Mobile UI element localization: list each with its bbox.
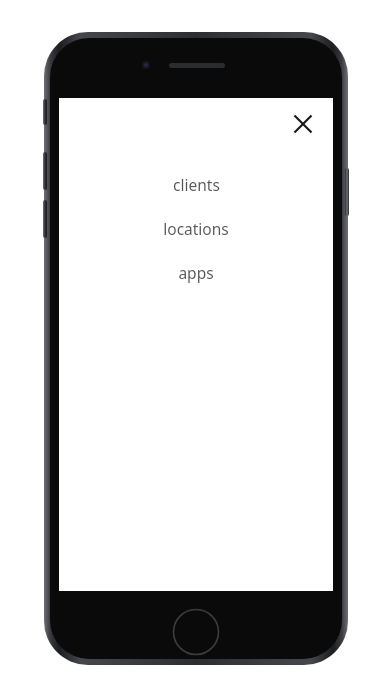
button[interactable]: clients	[59, 162, 333, 206]
other: Home	[172, 608, 220, 656]
button[interactable]: locations	[59, 206, 333, 250]
staticText: locations	[163, 218, 229, 239]
staticText: apps	[178, 262, 214, 283]
button[interactable]: Close	[283, 104, 323, 144]
button[interactable]: apps	[59, 250, 333, 294]
staticText: clients	[173, 174, 220, 195]
